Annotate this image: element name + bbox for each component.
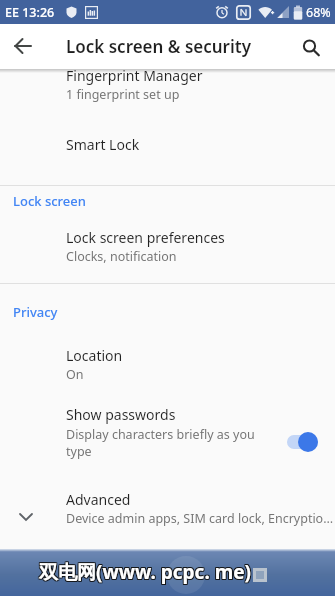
button[interactable]	[298, 35, 322, 59]
staticText: Clocks, notification	[66, 248, 177, 265]
staticText: Advanced	[66, 490, 131, 509]
staticText: Show passwords	[66, 405, 176, 424]
staticText: Location	[66, 346, 123, 365]
staticText: 双电网(www. pcpc. me)	[39, 558, 251, 584]
staticText: Display characters briefly as you type	[66, 426, 276, 459]
staticText: Lock screen	[13, 192, 86, 210]
staticText: 双电网(www. pcpc. me)	[38, 558, 250, 584]
button[interactable]: Smart Lock	[0, 119, 335, 167]
staticText: Smart Lock	[66, 135, 140, 154]
button[interactable]	[11, 34, 35, 58]
staticText: 68%	[306, 4, 331, 21]
staticText: Device admin apps, SIM card lock, Encryp…	[66, 510, 335, 527]
button[interactable]: Advanced	[0, 485, 335, 537]
staticText: 双电网(www. pcpc. me)	[39, 559, 251, 585]
staticText: 双电网(www. pcpc. me)	[40, 558, 252, 584]
staticText: Privacy	[13, 303, 58, 321]
staticText: Lock screen & security	[66, 35, 251, 58]
staticText: EE 13:26	[5, 4, 55, 21]
staticText: 双电网(www. pcpc. me)	[38, 559, 250, 585]
staticText: 1 fingerprint set up	[66, 86, 180, 103]
button[interactable]: Location	[0, 341, 335, 389]
staticText: On	[66, 366, 84, 383]
staticText: 双电网(www. pcpc. me)	[38, 560, 250, 586]
button[interactable]: Show passwords	[0, 401, 335, 465]
staticText: 双电网(www. pcpc. me)	[40, 560, 252, 586]
button[interactable]: Fingerprint Manager	[0, 61, 335, 111]
staticText: Fingerprint Manager	[66, 66, 203, 85]
staticText: 双电网(www. pcpc. me)	[39, 560, 251, 586]
staticText: Lock screen preferences	[66, 228, 225, 247]
button[interactable]: Lock screen preferences	[0, 222, 335, 274]
staticText: 双电网(www. pcpc. me)	[40, 559, 252, 585]
